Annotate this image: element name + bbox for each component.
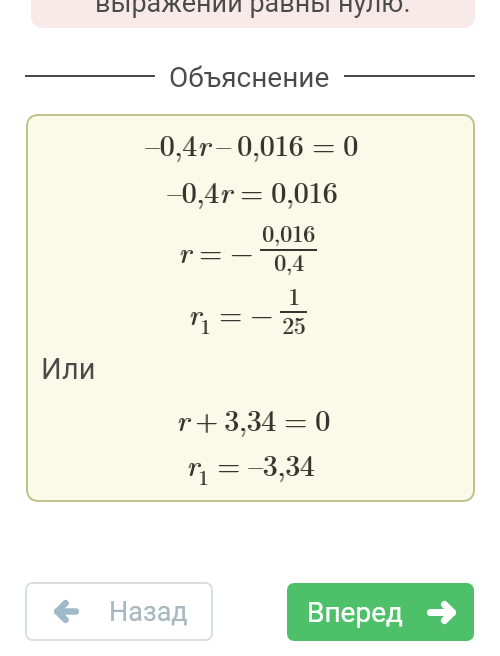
staticText: − bbox=[250, 292, 273, 333]
staticText: – bbox=[216, 123, 231, 164]
staticText: 25 bbox=[282, 308, 305, 341]
staticText: 0 bbox=[344, 123, 359, 164]
staticText: Или bbox=[41, 352, 96, 386]
staticText: r bbox=[177, 398, 190, 439]
staticText: = bbox=[220, 292, 243, 333]
staticText: 0,016 bbox=[262, 216, 315, 249]
staticText: r bbox=[189, 292, 202, 333]
staticText: r bbox=[186, 443, 199, 484]
staticText: – bbox=[217, 123, 232, 164]
staticText: r bbox=[178, 230, 191, 271]
staticText: 3,34 bbox=[224, 398, 276, 439]
staticText: + bbox=[196, 398, 219, 439]
staticText: 0,4 bbox=[275, 245, 305, 278]
staticText: r bbox=[197, 123, 210, 164]
staticText: 1 bbox=[200, 311, 210, 339]
button[interactable]: Back bbox=[25, 582, 213, 641]
staticText: 1 bbox=[288, 279, 300, 312]
staticText: = bbox=[241, 170, 264, 211]
other: Forward bbox=[427, 601, 456, 624]
staticText: r bbox=[176, 398, 189, 439]
staticText: 0,016 bbox=[238, 123, 305, 164]
staticText: 1 bbox=[198, 462, 208, 490]
staticText: = bbox=[199, 230, 222, 271]
staticText: Вперед bbox=[307, 596, 403, 629]
staticText: r bbox=[187, 443, 200, 484]
staticText: = bbox=[285, 398, 308, 439]
staticText: 3,34 bbox=[225, 398, 277, 439]
staticText: –0,4 bbox=[145, 123, 197, 164]
staticText: –0,4 bbox=[167, 170, 219, 211]
staticText: Назад bbox=[109, 596, 188, 628]
staticText: − bbox=[230, 230, 253, 271]
staticText: –0,4 bbox=[146, 123, 198, 164]
staticText: 0 bbox=[316, 398, 331, 439]
staticText: = bbox=[217, 443, 240, 484]
staticText: 0,016 bbox=[272, 170, 339, 211]
staticText: r bbox=[188, 292, 201, 333]
staticText: r bbox=[179, 230, 192, 271]
staticText: = bbox=[313, 123, 336, 164]
staticText: –3,34 bbox=[248, 443, 315, 484]
staticText: − bbox=[251, 292, 274, 333]
staticText: 1 bbox=[199, 462, 209, 490]
staticText: + bbox=[195, 398, 218, 439]
staticText: –3,34 bbox=[249, 443, 316, 484]
staticText: Объяснение bbox=[169, 61, 330, 91]
staticText: 0,016 bbox=[271, 170, 338, 211]
staticText: 1 bbox=[289, 279, 301, 312]
button[interactable]: Вперед bbox=[287, 583, 474, 641]
staticText: r bbox=[220, 170, 233, 211]
staticText: = bbox=[312, 123, 335, 164]
staticText: 0 bbox=[343, 123, 358, 164]
other: Back bbox=[54, 600, 79, 623]
staticText: 0,4 bbox=[274, 245, 304, 278]
staticText: = bbox=[284, 398, 307, 439]
staticText: 25 bbox=[283, 308, 306, 341]
staticText: = bbox=[219, 292, 242, 333]
staticText: = bbox=[218, 443, 241, 484]
staticText: = bbox=[200, 230, 223, 271]
staticText: r bbox=[219, 170, 232, 211]
staticText: –0,4 bbox=[168, 170, 220, 211]
staticText: 0 bbox=[315, 398, 330, 439]
staticText: выражений равны нулю. bbox=[95, 0, 411, 19]
staticText: r bbox=[198, 123, 211, 164]
staticText: 0,016 bbox=[263, 216, 316, 249]
staticText: 0,016 bbox=[237, 123, 304, 164]
staticText: = bbox=[240, 170, 263, 211]
staticText: − bbox=[231, 230, 254, 271]
staticText: 1 bbox=[201, 311, 211, 339]
